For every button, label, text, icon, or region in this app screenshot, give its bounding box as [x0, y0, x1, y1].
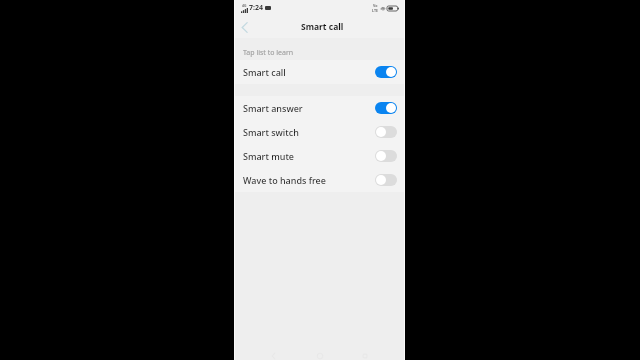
button[interactable]: Wave to hands free [234, 168, 405, 192]
staticText: Smart switch [243, 126, 299, 138]
button[interactable]: Smart answer [234, 96, 405, 120]
staticText: 4G [242, 3, 247, 8]
staticText: 7:24 [249, 3, 263, 13]
staticText: Smart call [301, 21, 344, 33]
button[interactable]: Smart call [234, 60, 405, 84]
staticText: Smart answer [243, 102, 303, 114]
button[interactable]: Back [234, 17, 254, 37]
staticText: Vo [373, 3, 378, 8]
button[interactable]: Smart mute [234, 144, 405, 168]
staticText: Wave to hands free [243, 174, 326, 186]
button[interactable]: Smart switch [234, 120, 405, 144]
staticText: Smart call [243, 66, 286, 78]
staticText: Tap list to learn [243, 48, 294, 58]
staticText: Smart mute [243, 150, 294, 162]
staticText: LTE [372, 8, 379, 13]
